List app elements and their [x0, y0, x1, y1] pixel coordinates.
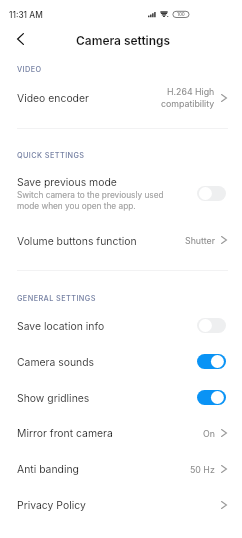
staticText: Mirror front camera	[17, 427, 113, 440]
staticText: Anti banding	[17, 463, 79, 476]
staticText: Save previous mode	[17, 176, 117, 189]
staticText: GENERAL SETTINGS	[17, 294, 96, 303]
button[interactable]: Back	[8, 27, 32, 51]
button[interactable]: Camera sounds	[0, 345, 242, 381]
staticText: 100	[177, 12, 185, 18]
button[interactable]: Volume buttons function	[0, 223, 242, 259]
button[interactable]: Show gridlines	[0, 381, 242, 416]
button[interactable]: Mirror front camera	[0, 416, 242, 452]
button[interactable]: Privacy Policy	[0, 488, 242, 524]
staticText: Privacy Policy	[17, 499, 86, 512]
button[interactable]: Save location info	[0, 309, 242, 345]
staticText: compatibility	[161, 98, 215, 109]
button[interactable]: Save previous mode	[0, 165, 242, 223]
staticText: Switch camera to the previously used	[17, 190, 164, 200]
button[interactable]: Video encoder	[0, 78, 242, 128]
staticText: QUICK SETTINGS	[17, 151, 85, 160]
staticText: 11:31 AM	[9, 10, 43, 20]
staticText: Shutter	[185, 235, 215, 246]
staticText: H.264 High	[167, 86, 215, 97]
staticText: On	[203, 428, 215, 439]
staticText: Volume buttons function	[17, 235, 137, 248]
staticText: Show gridlines	[17, 392, 90, 405]
staticText: mode when you open the app.	[17, 201, 136, 211]
staticText: Save location info	[17, 320, 105, 333]
button[interactable]: Anti banding	[0, 452, 242, 488]
staticText: Video encoder	[17, 92, 89, 105]
staticText: VIDEO	[17, 65, 42, 74]
staticText: Camera settings	[76, 33, 171, 47]
staticText: Camera sounds	[17, 356, 95, 369]
staticText: 50 Hz	[190, 464, 215, 475]
